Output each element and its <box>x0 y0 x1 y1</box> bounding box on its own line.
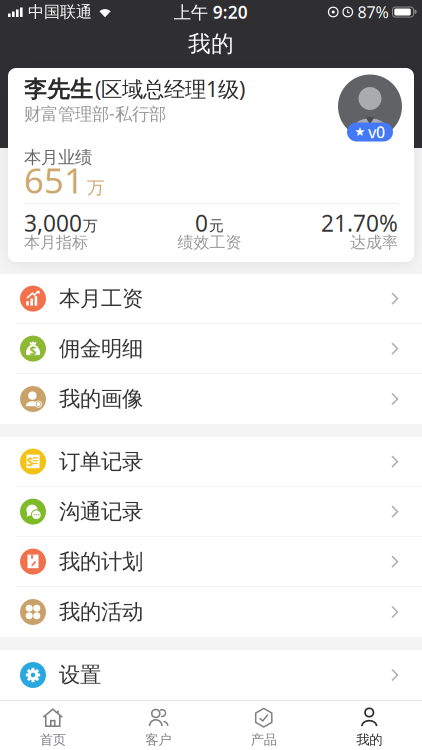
button[interactable]: 我的计划 <box>0 537 422 587</box>
staticText: 3,000 <box>24 208 82 238</box>
button[interactable]: 我的活动 <box>0 587 422 637</box>
staticText: (区域总经理1级) <box>95 75 245 103</box>
staticText: 元 <box>209 217 224 235</box>
staticText: 651 <box>24 157 84 203</box>
staticText: 本月指标 <box>24 233 88 252</box>
staticText: 李先生 <box>24 76 93 103</box>
staticText: 客户 <box>145 732 171 748</box>
staticText: 订单记录 <box>59 448 143 475</box>
staticText: 产品 <box>251 732 277 748</box>
button[interactable]: 本月工资 <box>0 274 422 324</box>
staticText: 本月业绩 <box>24 147 92 168</box>
staticText: 我的 <box>356 732 382 748</box>
staticText: 21.70% <box>321 208 398 238</box>
staticText: v0 <box>368 121 385 143</box>
button[interactable]: $ <box>0 324 422 374</box>
staticText: 中国联通 <box>28 2 92 22</box>
staticText: 佣金明细 <box>59 335 143 362</box>
staticText: 87% <box>357 1 388 23</box>
staticText: 绩效工资 <box>177 233 241 252</box>
staticText: $ <box>27 454 34 470</box>
staticText: 万 <box>87 177 104 198</box>
button[interactable]: 沟通记录 <box>0 487 422 537</box>
button[interactable]: 客户 <box>105 706 211 748</box>
staticText: 上午 9:20 <box>174 0 248 23</box>
staticText: 0 <box>195 208 208 238</box>
staticText: 财富管理部-私行部 <box>24 102 166 125</box>
staticText: 沟通记录 <box>59 498 143 525</box>
staticText: 本月工资 <box>59 285 143 312</box>
button[interactable]: 首页 <box>0 706 105 748</box>
staticText: 我的画像 <box>59 386 143 412</box>
staticText: 我的 <box>188 30 234 58</box>
staticText: 首页 <box>40 732 66 748</box>
staticText: 设置 <box>59 662 101 688</box>
button[interactable]: 我的画像 <box>0 374 422 424</box>
staticText: $ <box>29 343 36 359</box>
staticText: 万 <box>83 217 98 235</box>
staticText: 我的计划 <box>59 548 143 575</box>
staticText: 达成率 <box>350 233 398 252</box>
button[interactable]: 设置 <box>0 650 422 700</box>
button[interactable]: 产品 <box>211 706 316 748</box>
button[interactable]: 我的 <box>316 706 422 748</box>
button[interactable]: $ <box>0 437 422 487</box>
staticText: 我的活动 <box>59 599 143 625</box>
